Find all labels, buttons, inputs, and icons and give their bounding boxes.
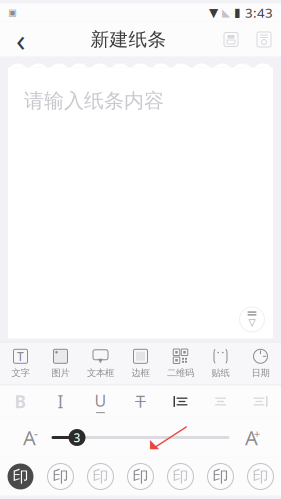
staticText: 3 bbox=[73, 429, 80, 445]
staticText: 印 bbox=[132, 467, 148, 486]
button[interactable]: Bold bbox=[0, 385, 40, 417]
button[interactable]: 日期 bbox=[240, 341, 280, 385]
button[interactable]: T bbox=[0, 341, 40, 385]
button[interactable]: Decrease font size bbox=[7, 417, 51, 457]
button[interactable]: Stamp style 5 bbox=[160, 457, 200, 495]
staticText: ▼ bbox=[209, 6, 218, 19]
staticText: T bbox=[136, 391, 145, 412]
staticText: 3:43 bbox=[245, 4, 273, 21]
button[interactable]: Align center bbox=[200, 385, 240, 417]
staticText: 印 bbox=[12, 467, 28, 486]
button[interactable]: Stamp style 3 bbox=[80, 457, 120, 495]
staticText: 二维码 bbox=[167, 367, 194, 379]
staticText: 印 bbox=[52, 467, 68, 486]
button[interactable]: Save bbox=[215, 21, 247, 57]
staticText: - bbox=[34, 425, 38, 441]
staticText: 文本框 bbox=[87, 367, 114, 379]
staticText: ▽ bbox=[248, 317, 255, 328]
button[interactable]: Align left bbox=[160, 385, 200, 417]
button[interactable]: 二维码 bbox=[160, 341, 200, 385]
button[interactable]: 贴纸 bbox=[200, 341, 240, 385]
staticText: 新建纸条 bbox=[90, 28, 166, 51]
button[interactable]: Italic bbox=[40, 385, 80, 417]
button[interactable]: Underline bbox=[80, 385, 120, 417]
staticText: 图片 bbox=[51, 367, 69, 379]
staticText: I bbox=[57, 390, 63, 413]
staticText: ◣ bbox=[150, 437, 159, 450]
staticText: A bbox=[245, 424, 258, 451]
staticText: T bbox=[17, 348, 24, 364]
staticText: ◣ bbox=[222, 6, 230, 18]
button[interactable]: ▾ bbox=[80, 341, 120, 385]
button[interactable]: 边框 bbox=[120, 341, 160, 385]
button[interactable]: 图片 bbox=[40, 341, 80, 385]
staticText: 印 bbox=[172, 467, 188, 486]
button[interactable]: Stamp style 2 bbox=[40, 457, 80, 495]
button[interactable]: Increase font size bbox=[229, 417, 273, 457]
staticText: ▾ bbox=[98, 355, 103, 366]
staticText: 印 bbox=[92, 467, 108, 486]
button[interactable]: Collapse editor bbox=[237, 304, 267, 334]
staticText: 边框 bbox=[131, 367, 149, 379]
staticText: + bbox=[254, 426, 260, 441]
button[interactable]: Back bbox=[0, 21, 42, 57]
staticText: U bbox=[94, 390, 106, 411]
staticText: A bbox=[23, 424, 36, 451]
button[interactable]: Preview bbox=[247, 21, 281, 57]
staticText: 日期 bbox=[251, 367, 269, 379]
staticText: 印 bbox=[212, 467, 228, 486]
button[interactable]: Stamp style 1 bbox=[0, 457, 40, 495]
staticText: ▣ bbox=[8, 7, 17, 18]
button[interactable]: Stamp style 4 bbox=[120, 457, 160, 495]
button[interactable]: Align right bbox=[240, 385, 280, 417]
button[interactable]: Strikethrough bbox=[120, 385, 160, 417]
button[interactable]: Stamp style 6 bbox=[200, 457, 240, 495]
staticText: 文字 bbox=[11, 367, 29, 379]
staticText: B bbox=[14, 390, 26, 413]
staticText: ‹ bbox=[16, 19, 26, 60]
staticText: 贴纸 bbox=[211, 367, 229, 379]
staticText: ▮ bbox=[234, 6, 241, 19]
staticText: 印 bbox=[252, 467, 268, 486]
button[interactable]: Stamp style 7 bbox=[240, 457, 280, 495]
staticText: 请输入纸条内容 bbox=[24, 88, 164, 113]
